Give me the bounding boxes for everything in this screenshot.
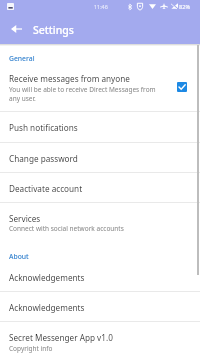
button[interactable] <box>0 292 200 322</box>
staticText: Secret Messenger App v1.0 <box>9 332 113 343</box>
button[interactable] <box>0 203 200 241</box>
button[interactable] <box>0 173 200 202</box>
staticText: 82% <box>179 3 191 11</box>
button[interactable] <box>0 143 200 173</box>
staticText: Deactivate account <box>9 183 83 194</box>
staticText: 11:46 <box>94 3 108 10</box>
staticText: Acknowledgements <box>9 302 85 313</box>
staticText: Settings <box>33 23 74 37</box>
staticText: Receive messages from anyone <box>9 73 130 84</box>
staticText: Acknowledgements <box>9 272 85 283</box>
staticText: Push notifications <box>9 122 78 133</box>
staticText: Connect with social network accounts <box>9 224 124 233</box>
button[interactable] <box>0 112 200 142</box>
button[interactable] <box>0 322 200 355</box>
staticText: Services <box>9 213 41 224</box>
staticText: About <box>9 252 29 261</box>
staticText: Change password <box>9 153 78 164</box>
staticText: You will be able to receive Direct Messa… <box>9 85 162 103</box>
button[interactable] <box>0 262 200 291</box>
staticText: Copyright info <box>9 344 53 353</box>
staticText: General <box>9 54 35 63</box>
button[interactable] <box>0 70 200 111</box>
button[interactable]: Navigate up <box>5 17 28 40</box>
